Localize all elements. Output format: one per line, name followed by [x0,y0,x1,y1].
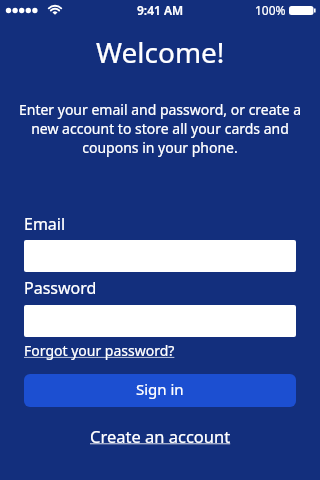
staticText: Forgot your password? [24,341,175,360]
button[interactable]: Sign in [24,374,296,407]
button[interactable] [24,305,296,337]
button[interactable] [24,240,296,272]
staticText: Create an account [90,425,231,447]
button[interactable]: Forgot your password? [24,341,175,360]
staticText: Password [24,277,97,299]
staticText: Email [24,213,66,235]
staticText: Welcome! [96,33,225,71]
staticText: Enter your email and password, or create… [0,100,320,157]
button[interactable]: Create an account [90,425,231,447]
staticText: 9:41 AM [137,2,184,18]
staticText: 100% [255,2,286,18]
staticText: Sign in [136,379,184,399]
